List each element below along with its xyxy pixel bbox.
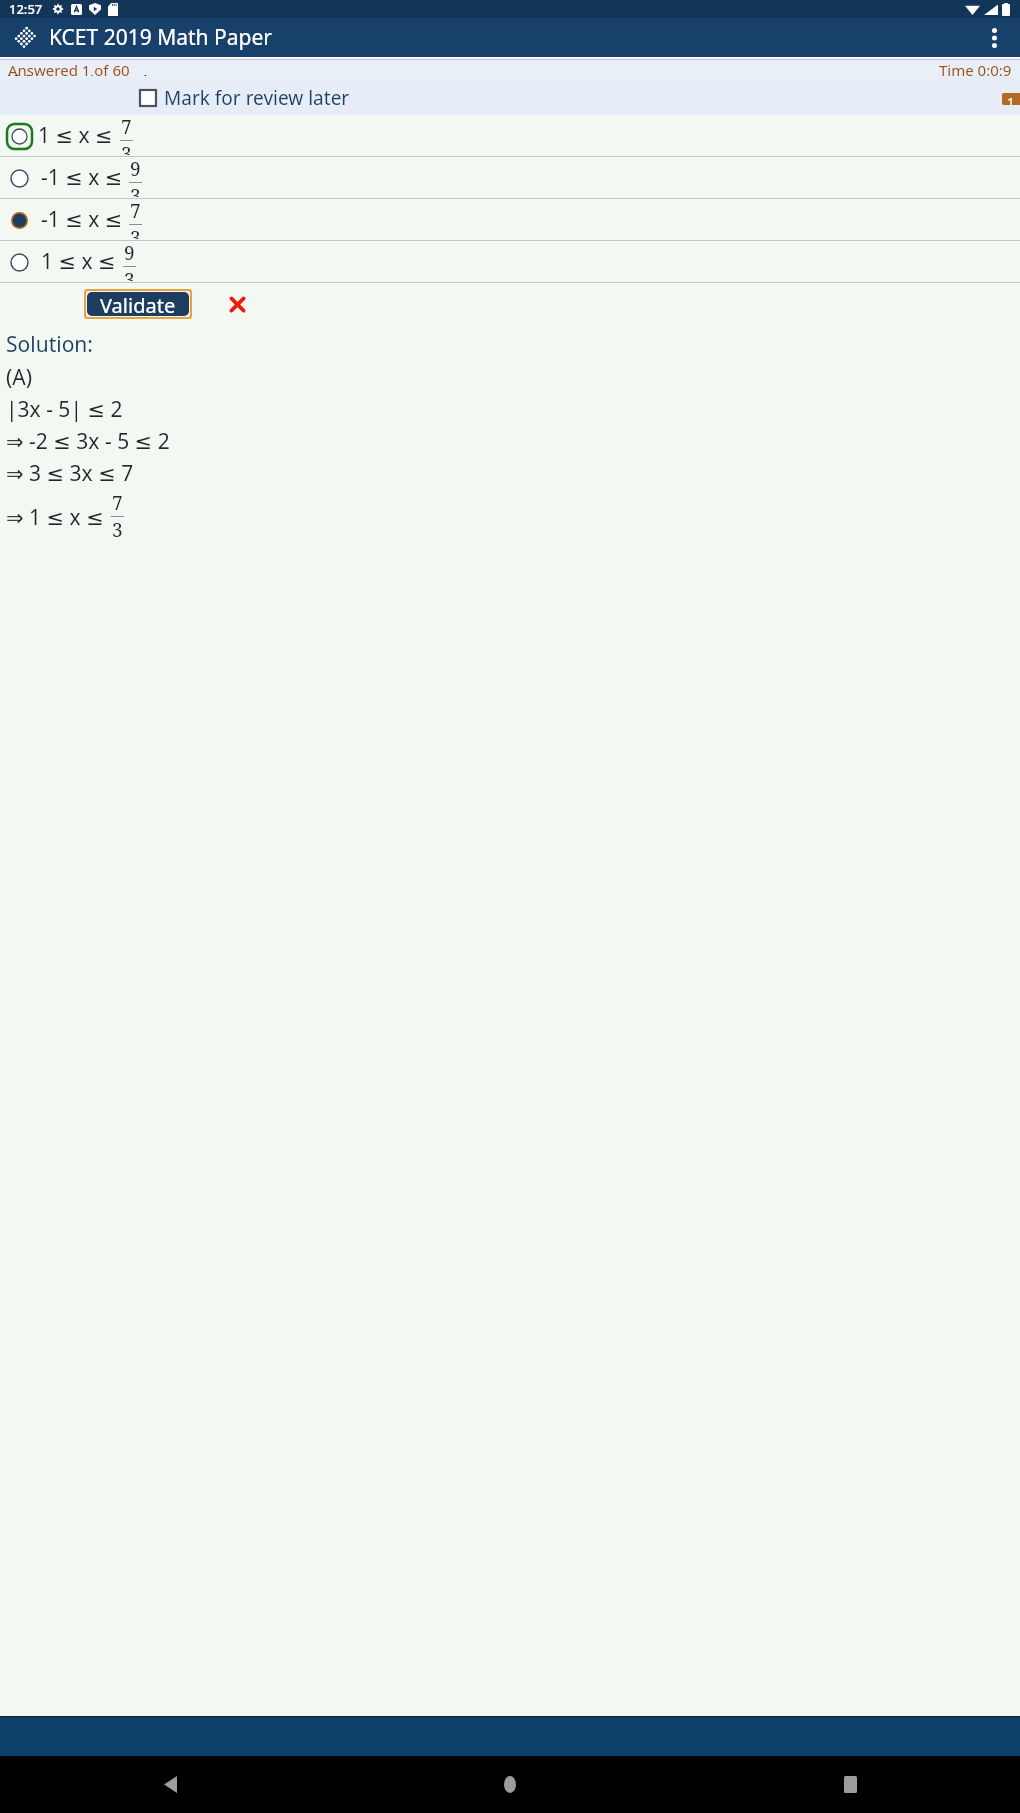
button[interactable]: Mark for review later — [140, 85, 1020, 111]
staticText: |3x - 5| ≤ 2 — [6, 395, 123, 424]
staticText: Time 0:0:9 — [939, 60, 1012, 77]
staticText: 12:57 — [9, 0, 43, 18]
staticText: Solution: — [6, 330, 93, 359]
staticText: Mark for review later — [164, 85, 350, 111]
button[interactable]: Home — [340, 1756, 680, 1813]
button[interactable]: 1 ≤ x ≤ — [0, 115, 1020, 156]
button[interactable]: Recent apps — [680, 1756, 1020, 1813]
staticText: 3 — [112, 517, 123, 543]
staticText: 3 — [130, 225, 141, 239]
staticText: if | 3x - 5 | ≤ 2 then — [7, 70, 176, 76]
staticText: 1 — [1007, 93, 1015, 105]
staticText: 3 — [121, 141, 132, 155]
staticText: ⇒ -2 ≤ 3x - 5 ≤ 2 — [6, 427, 170, 456]
staticText: 9 — [124, 240, 135, 266]
button[interactable]: Validate — [87, 292, 189, 316]
button[interactable]: Back — [0, 1756, 340, 1813]
staticText: 9 — [130, 156, 141, 182]
button[interactable]: More options — [978, 21, 1011, 54]
staticText: 7 — [112, 490, 123, 516]
staticText: 1 ≤ x ≤ — [38, 121, 119, 150]
staticText: 3 — [124, 267, 135, 281]
staticText: KCET 2019 Math Paper — [49, 23, 272, 52]
staticText: Validate — [100, 292, 176, 316]
staticText: 7 — [130, 198, 141, 224]
staticText: 3 — [130, 183, 141, 197]
staticText: 7 — [121, 114, 132, 140]
staticText: 1 ≤ x ≤ — [41, 247, 122, 276]
button[interactable]: -1 ≤ x ≤ — [0, 199, 1020, 240]
button[interactable]: -1 ≤ x ≤ — [0, 157, 1020, 198]
staticText: -1 ≤ x ≤ — [41, 205, 128, 234]
button[interactable]: 1 ≤ x ≤ — [0, 241, 1020, 282]
staticText: ⇒ 1 ≤ x ≤ — [6, 503, 110, 532]
staticText: -1 ≤ x ≤ — [41, 163, 128, 192]
staticText: (A) — [6, 363, 33, 392]
staticText: ⇒ 3 ≤ 3x ≤ 7 — [6, 459, 134, 488]
staticText: Answered 1 of 60 — [8, 60, 130, 77]
button[interactable]: 1 — [1002, 93, 1020, 105]
